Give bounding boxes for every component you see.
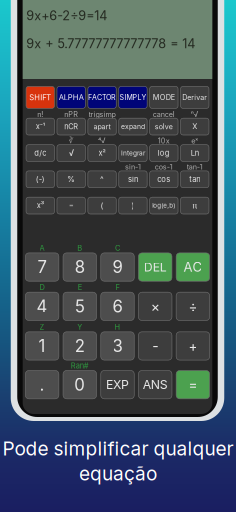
button[interactable]: x⁻¹ — [26, 118, 54, 135]
button[interactable]: cos — [150, 171, 178, 188]
button[interactable]: 7 — [25, 253, 59, 281]
button[interactable]: 3 — [101, 332, 134, 360]
staticText: AC — [183, 259, 202, 275]
staticText: · — [101, 78, 103, 87]
button[interactable]: AC — [176, 253, 210, 281]
button[interactable]: solve — [150, 118, 178, 135]
button[interactable]: % — [57, 171, 85, 188]
button[interactable]: ( — [88, 197, 116, 214]
button[interactable]: MODE — [150, 86, 178, 108]
button[interactable]: Derivar — [181, 86, 209, 108]
button[interactable]: ANS — [138, 370, 172, 399]
button[interactable]: apart — [88, 118, 116, 135]
button[interactable]: Ln — [181, 145, 209, 161]
staticText: EXP — [106, 377, 129, 392]
staticText: 9 — [112, 257, 122, 277]
staticText: 7 — [38, 257, 47, 277]
button[interactable]: SIMPLY — [119, 86, 147, 108]
staticText: + — [188, 337, 197, 354]
staticText: nCR — [64, 122, 78, 131]
staticText: 5 — [75, 296, 85, 316]
staticText: MODE — [153, 93, 175, 102]
button[interactable]: - — [138, 332, 172, 360]
staticText: cos — [157, 175, 170, 184]
staticText: ^ — [100, 175, 104, 184]
staticText: nPR — [64, 110, 78, 119]
staticText: × — [151, 298, 160, 315]
button[interactable]: FACTOR — [88, 86, 116, 108]
staticText: · — [132, 136, 134, 145]
staticText: √ — [69, 148, 74, 158]
button[interactable]: sin — [119, 171, 147, 188]
staticText: Pode simplificar qualquer — [2, 437, 233, 460]
button[interactable]: ) — [119, 197, 147, 214]
button[interactable]: ALPHA — [57, 86, 85, 108]
button[interactable]: 9 — [101, 253, 134, 281]
button[interactable]: 5 — [63, 292, 96, 320]
button[interactable]: . — [25, 370, 59, 399]
staticText: Integrar — [121, 149, 145, 157]
staticText: x³ — [37, 201, 44, 210]
staticText: · — [163, 189, 165, 198]
button[interactable]: = — [57, 197, 85, 214]
staticText: · — [154, 244, 156, 253]
staticText: 6 — [112, 296, 122, 316]
staticText: C — [115, 244, 120, 253]
staticText: X — [192, 122, 197, 131]
staticText: log — [158, 148, 170, 158]
button[interactable]: 6 — [101, 292, 134, 320]
button[interactable]: 4 — [25, 292, 59, 320]
button[interactable]: Integrar — [119, 145, 147, 161]
button[interactable]: d/c — [26, 145, 54, 161]
button[interactable]: log(e,b) — [150, 197, 178, 214]
button[interactable]: 1 — [25, 332, 59, 360]
button[interactable]: X — [181, 118, 209, 135]
staticText: d/c — [34, 148, 46, 158]
staticText: 1 — [39, 336, 46, 356]
staticText: · — [39, 78, 41, 87]
staticText: cos-1 — [155, 163, 173, 171]
staticText: apart — [94, 122, 111, 131]
button[interactable]: (-) — [26, 171, 54, 188]
button[interactable]: ^ — [88, 171, 116, 188]
button[interactable]: expand — [119, 118, 147, 135]
button[interactable]: tan — [181, 171, 209, 188]
staticText: 8 — [75, 257, 85, 277]
staticText: · — [163, 78, 165, 87]
staticText: A — [40, 244, 45, 253]
staticText: · — [132, 189, 134, 198]
button[interactable]: π — [181, 197, 209, 214]
button[interactable]: × — [138, 292, 172, 320]
button[interactable]: 2 — [63, 332, 96, 360]
button[interactable]: 0 — [63, 370, 96, 399]
button[interactable]: EXP — [101, 370, 134, 399]
button[interactable]: + — [176, 332, 210, 360]
staticText: · — [192, 322, 194, 331]
staticText: - — [152, 337, 158, 354]
button[interactable]: 8 — [63, 253, 96, 281]
staticText: · — [70, 163, 72, 171]
button[interactable]: DEL — [138, 253, 172, 281]
button[interactable]: log — [150, 145, 178, 161]
button[interactable]: x³ — [26, 197, 54, 214]
staticText: ÷ — [188, 298, 197, 315]
button[interactable]: = — [176, 370, 210, 399]
staticText: · — [70, 78, 72, 87]
button[interactable]: SHIFT — [26, 86, 54, 108]
staticText: 4 — [37, 296, 48, 316]
staticText: DEL — [144, 260, 167, 274]
button[interactable]: nCR — [57, 118, 85, 135]
staticText: ⁴√ — [98, 136, 106, 145]
staticText: SHIFT — [29, 93, 51, 102]
button[interactable]: x² — [88, 145, 116, 161]
staticText: Ln — [191, 148, 199, 158]
button[interactable]: ÷ — [176, 292, 210, 320]
staticText: · — [101, 163, 103, 171]
staticText: . — [40, 375, 45, 395]
button[interactable]: √ — [57, 145, 85, 161]
staticText: 0 — [74, 375, 85, 395]
staticText: Y — [77, 322, 82, 331]
